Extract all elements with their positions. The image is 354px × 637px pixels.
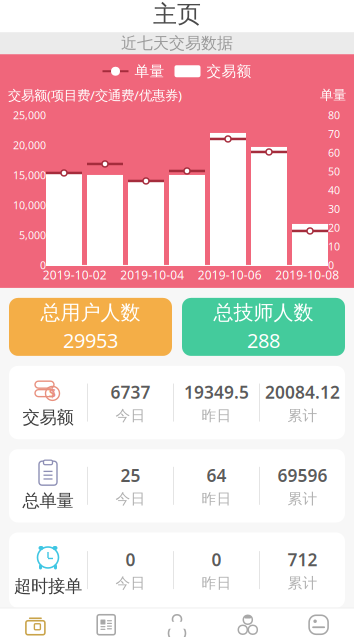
staticText: 近七天交易数据 [121, 33, 233, 53]
staticText: 总单量 [22, 490, 73, 511]
staticText: 712 [287, 548, 317, 571]
staticText: 70 [328, 127, 340, 141]
staticText: 0 [211, 548, 221, 571]
staticText: 2019-10-06 [198, 267, 262, 283]
staticText: 交易额 [22, 407, 73, 428]
staticText: 64 [206, 464, 226, 487]
staticText: 80 [328, 108, 340, 122]
staticText: 50 [328, 164, 340, 178]
staticText: 20,000 [13, 138, 46, 152]
staticText: 累计 [287, 574, 317, 592]
staticText: 总用户人数 [40, 300, 140, 325]
staticText: 0 [40, 258, 46, 272]
staticText: 交易额(项目费/交通费/优惠券) [8, 86, 182, 104]
button[interactable]: 总用户人数 [9, 298, 172, 356]
staticText: $ [49, 385, 56, 401]
staticText: 29953 [63, 327, 118, 353]
button[interactable]: 主页 [0, 613, 71, 637]
button[interactable]: 订单 [71, 613, 142, 637]
staticText: 单量 [320, 87, 346, 103]
staticText: 累计 [287, 406, 317, 424]
staticText: 10,000 [13, 198, 46, 212]
staticText: 累计 [287, 490, 317, 508]
staticText: 288 [247, 327, 280, 353]
staticText: 今日 [115, 574, 145, 592]
staticText: 今日 [115, 490, 145, 508]
staticText: 今日 [115, 406, 145, 424]
staticText: 2019-10-08 [275, 267, 339, 283]
button[interactable]: 应用 [283, 613, 354, 637]
staticText: 2019-10-04 [120, 267, 184, 283]
staticText: 19349.5 [184, 380, 249, 403]
button[interactable]: 总技师人数 [182, 298, 345, 356]
staticText: 昨日 [201, 406, 231, 424]
button[interactable]: 用户 [142, 613, 212, 637]
button[interactable]: 技师 [212, 613, 283, 637]
staticText: 20084.12 [265, 380, 340, 403]
staticText: 25,000 [13, 108, 46, 122]
button[interactable]: 总单量 [9, 449, 345, 522]
staticText: 20 [328, 220, 340, 235]
staticText: 5,000 [19, 228, 46, 242]
button[interactable]: $ [9, 366, 345, 439]
staticText: 60 [328, 145, 340, 160]
staticText: 69596 [277, 464, 327, 487]
button[interactable]: 超时接单 [9, 532, 345, 608]
staticText: 15,000 [13, 168, 46, 182]
staticText: 2019-10-02 [43, 267, 107, 283]
staticText: 昨日 [201, 490, 231, 508]
staticText: 30 [328, 202, 340, 216]
staticText: 昨日 [201, 574, 231, 592]
staticText: 6737 [110, 380, 150, 403]
staticText: 主页 [153, 0, 201, 29]
staticText: 超时接单 [14, 575, 82, 597]
staticText: 25 [120, 464, 140, 487]
staticText: 交易额 [206, 62, 251, 80]
staticText: 10 [328, 239, 340, 253]
staticText: 单量 [134, 62, 164, 80]
staticText: 总技师人数 [213, 300, 313, 325]
staticText: 40 [328, 183, 340, 197]
staticText: 0 [125, 548, 135, 571]
staticText: 0 [328, 258, 334, 272]
